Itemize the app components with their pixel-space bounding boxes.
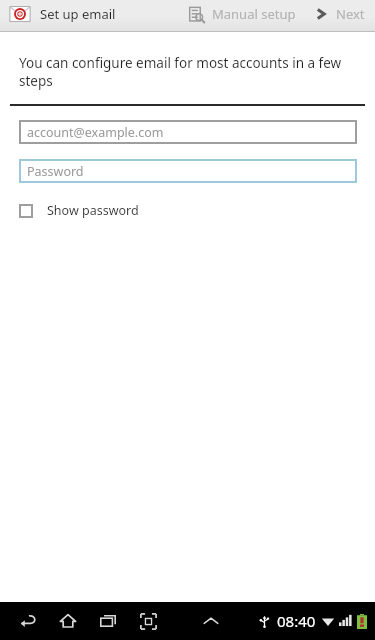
staticText: 08:40 (277, 611, 316, 631)
button[interactable]: Next (309, 2, 375, 26)
button[interactable]: Recent apps (92, 605, 124, 637)
button[interactable]: Show password (19, 199, 149, 222)
button[interactable]: Password (19, 159, 357, 183)
button[interactable]: Screenshot (132, 605, 164, 637)
other: Manual setup (188, 6, 205, 23)
staticText: Set up email (40, 5, 116, 23)
other: Email app icon (9, 3, 31, 25)
staticText: Show password (47, 202, 139, 219)
button[interactable]: Home (52, 605, 84, 637)
staticText: You can configure email for most account… (19, 54, 375, 90)
staticText: Manual setup (212, 5, 296, 23)
button[interactable]: Manual setup (183, 2, 301, 26)
staticText: Next (336, 5, 365, 23)
button[interactable]: account@example.com (19, 120, 357, 144)
staticText: Password (27, 163, 84, 180)
button[interactable]: Email app icon (0, 0, 122, 28)
button[interactable]: Expand notifications (196, 606, 226, 636)
staticText: account@example.com (27, 124, 164, 141)
button[interactable]: Back (12, 605, 44, 637)
